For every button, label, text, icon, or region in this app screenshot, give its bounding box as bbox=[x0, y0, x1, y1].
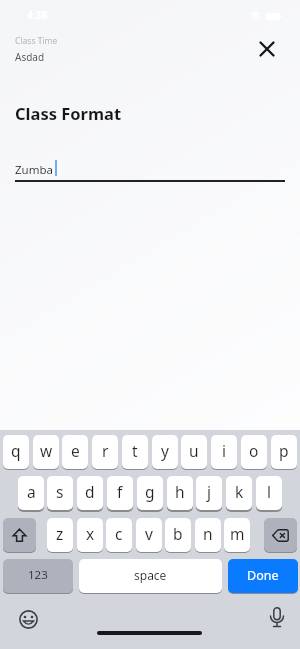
staticText: space bbox=[134, 567, 167, 583]
staticText: r bbox=[102, 440, 109, 461]
staticText: y bbox=[161, 440, 169, 461]
staticText: p bbox=[279, 440, 289, 461]
staticText: b bbox=[173, 523, 183, 544]
button[interactable]: Zumba bbox=[15, 150, 285, 182]
staticText: z bbox=[56, 523, 64, 544]
staticText: i bbox=[222, 440, 226, 461]
staticText: Done bbox=[247, 567, 279, 584]
button[interactable]: f bbox=[107, 476, 133, 510]
staticText: q bbox=[11, 440, 21, 461]
button[interactable]: r bbox=[92, 435, 118, 469]
button[interactable]: p bbox=[271, 435, 297, 469]
button[interactable] bbox=[264, 518, 297, 552]
button[interactable]: 123 bbox=[3, 559, 73, 593]
staticText: n bbox=[203, 523, 213, 544]
button[interactable]: d bbox=[77, 476, 103, 510]
staticText: 4:38 bbox=[27, 8, 47, 22]
button[interactable]: n bbox=[195, 518, 221, 552]
button[interactable]: g bbox=[137, 476, 163, 510]
staticText: e bbox=[71, 440, 80, 461]
button[interactable]: s bbox=[47, 476, 73, 510]
button[interactable] bbox=[3, 518, 36, 552]
staticText: g bbox=[145, 481, 155, 502]
button[interactable]: u bbox=[181, 435, 207, 469]
staticText: u bbox=[189, 440, 199, 461]
staticText: h bbox=[175, 481, 185, 502]
button[interactable]: b bbox=[165, 518, 191, 552]
staticText: Class Time bbox=[15, 35, 58, 47]
button[interactable]: j bbox=[196, 476, 222, 510]
button[interactable]: space bbox=[79, 559, 222, 593]
staticText: o bbox=[249, 440, 259, 461]
staticText: d bbox=[85, 481, 95, 502]
staticText: Zumba bbox=[15, 162, 53, 178]
staticText: c bbox=[115, 523, 123, 544]
staticText: a bbox=[27, 481, 36, 502]
button[interactable]: Done bbox=[228, 559, 298, 593]
button[interactable]: i bbox=[211, 435, 237, 469]
button[interactable]: x bbox=[77, 518, 103, 552]
button[interactable]: h bbox=[167, 476, 193, 510]
button[interactable]: a bbox=[18, 476, 44, 510]
staticText: 123 bbox=[28, 567, 48, 583]
staticText: l bbox=[267, 481, 271, 502]
staticText: m bbox=[230, 523, 245, 544]
button[interactable]: z bbox=[47, 518, 73, 552]
button[interactable]: o bbox=[241, 435, 267, 469]
button[interactable]: k bbox=[226, 476, 252, 510]
button[interactable]: c bbox=[106, 518, 132, 552]
staticText: Class Format bbox=[15, 102, 122, 124]
staticText: Asdad bbox=[15, 50, 45, 64]
staticText: s bbox=[56, 481, 64, 502]
button[interactable]: e bbox=[62, 435, 88, 469]
staticText: t bbox=[132, 440, 138, 461]
staticText: x bbox=[86, 523, 95, 544]
button[interactable]: y bbox=[152, 435, 178, 469]
button[interactable]: l bbox=[256, 476, 282, 510]
button[interactable]: v bbox=[136, 518, 162, 552]
button[interactable] bbox=[263, 604, 291, 632]
button[interactable] bbox=[14, 605, 42, 633]
button[interactable]: m bbox=[224, 518, 250, 552]
button[interactable]: t bbox=[122, 435, 148, 469]
button[interactable] bbox=[253, 35, 281, 63]
staticText: j bbox=[207, 481, 211, 502]
button[interactable]: q bbox=[3, 435, 29, 469]
staticText: k bbox=[235, 481, 244, 502]
staticText: w bbox=[40, 440, 53, 461]
staticText: f bbox=[117, 481, 123, 502]
staticText: v bbox=[145, 523, 153, 544]
button[interactable]: w bbox=[33, 435, 59, 469]
